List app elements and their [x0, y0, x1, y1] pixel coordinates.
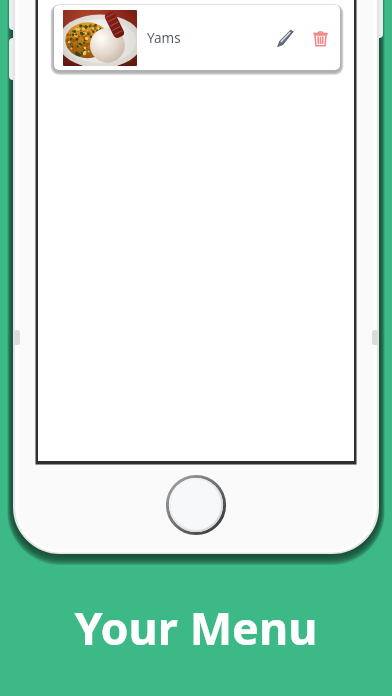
- button[interactable]: Edit: [270, 23, 300, 53]
- button[interactable]: Yams: [54, 5, 340, 70]
- button[interactable]: Delete: [305, 23, 335, 53]
- staticText: Yams: [147, 29, 181, 47]
- staticText: Your Menu: [0, 597, 392, 658]
